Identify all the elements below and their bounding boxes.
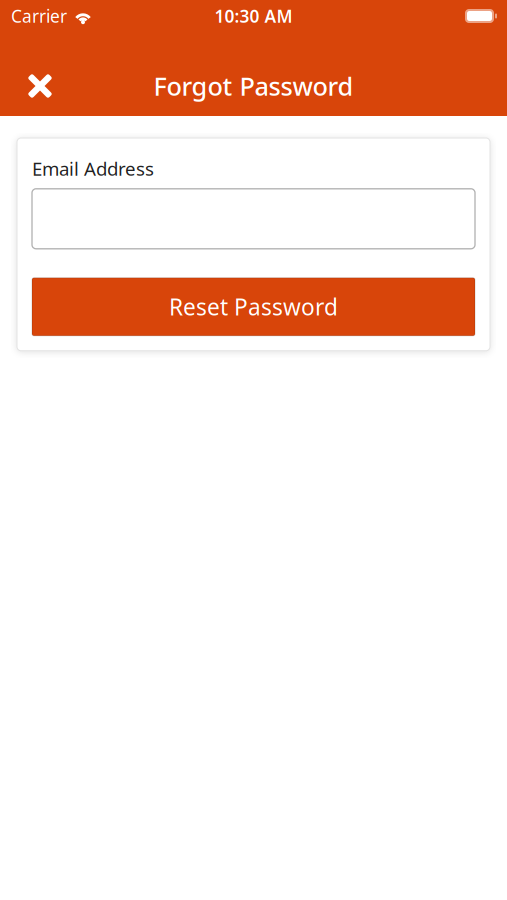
staticText: 10:30 AM xyxy=(214,4,292,27)
staticText: Email Address xyxy=(32,156,154,181)
button[interactable]: Close xyxy=(18,64,62,108)
button[interactable]: Reset Password xyxy=(32,278,475,336)
staticText: Carrier xyxy=(11,4,67,27)
staticText: Reset Password xyxy=(169,292,338,322)
staticText: Forgot Password xyxy=(153,69,353,103)
